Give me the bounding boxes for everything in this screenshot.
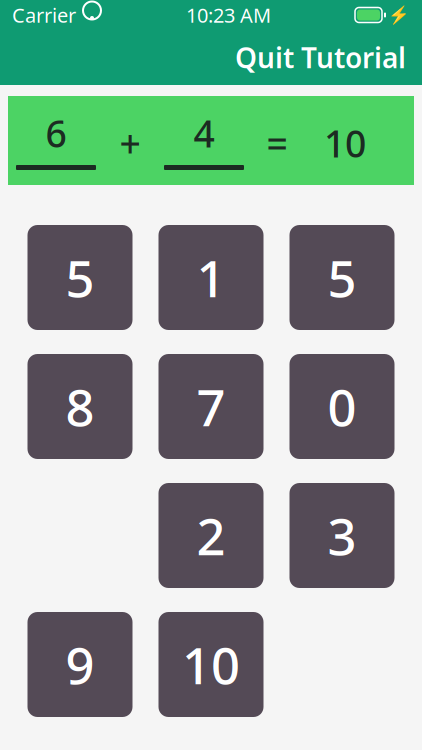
- staticText: 3: [327, 502, 356, 569]
- staticText: 2: [196, 502, 225, 569]
- button[interactable]: 2: [158, 483, 263, 588]
- staticText: Quit Tutorial: [235, 39, 406, 76]
- staticText: 5: [327, 244, 356, 311]
- staticText: 4: [193, 108, 214, 158]
- staticText: =: [266, 118, 287, 168]
- button[interactable]: 10: [158, 612, 263, 717]
- staticText: Carrier: [12, 2, 76, 28]
- staticText: 5: [65, 244, 94, 311]
- staticText: +: [119, 118, 140, 168]
- staticText: 10: [182, 631, 240, 698]
- button[interactable]: 5: [289, 225, 394, 330]
- staticText: 1: [196, 244, 225, 311]
- staticText: 9: [65, 631, 94, 698]
- staticText: 8: [65, 373, 94, 440]
- staticText: 0: [327, 373, 356, 440]
- button[interactable]: Quit Tutorial: [227, 33, 414, 82]
- staticText: 6: [45, 108, 66, 158]
- staticText: 10: [324, 118, 366, 168]
- button[interactable]: 5: [27, 225, 132, 330]
- button[interactable]: 9: [27, 612, 132, 717]
- button[interactable]: 8: [27, 354, 132, 459]
- staticText: 10:23 AM: [186, 2, 271, 28]
- button[interactable]: 1: [158, 225, 263, 330]
- staticText: 7: [196, 373, 225, 440]
- staticText: ⚡: [388, 5, 410, 25]
- button[interactable]: 3: [289, 483, 394, 588]
- button[interactable]: 7: [158, 354, 263, 459]
- button[interactable]: 0: [289, 354, 394, 459]
